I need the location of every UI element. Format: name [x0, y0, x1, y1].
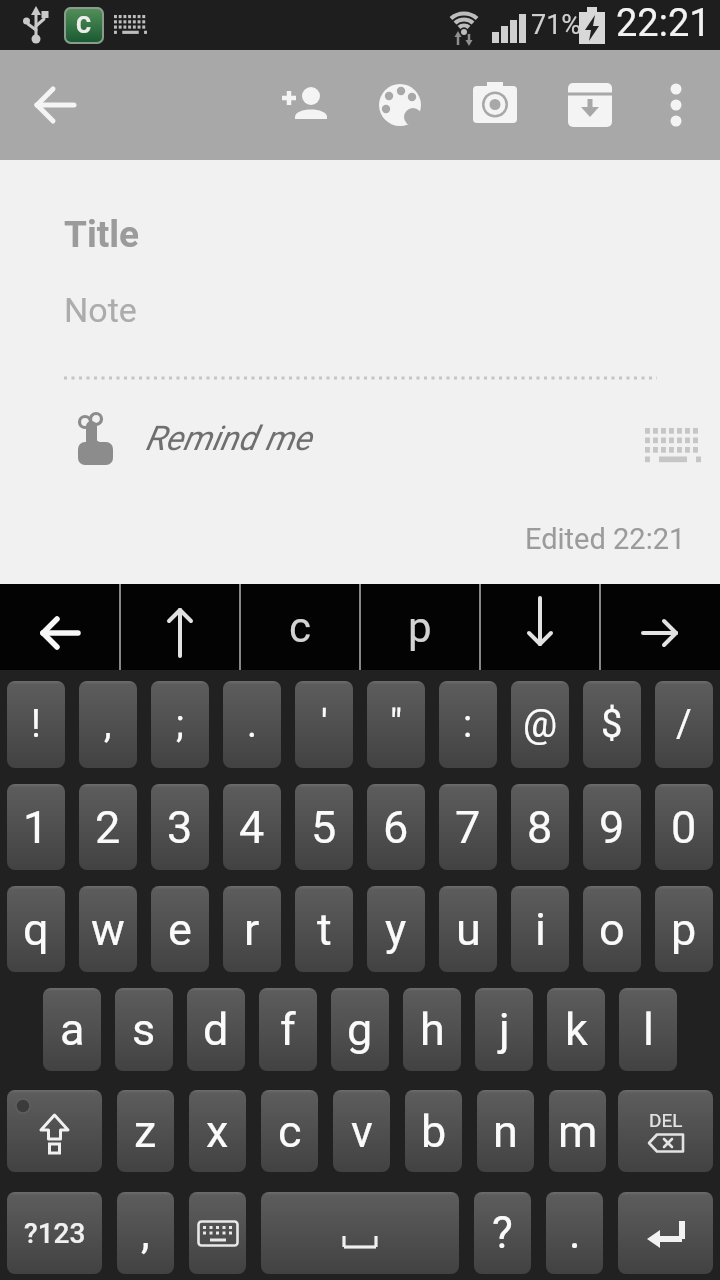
button[interactable]: ': [295, 681, 353, 768]
button[interactable]: /: [655, 681, 713, 768]
button[interactable]: [480, 584, 600, 670]
button[interactable]: .: [223, 681, 281, 768]
staticText: b: [421, 1105, 447, 1158]
button[interactable]: ?: [474, 1192, 531, 1274]
staticText: u: [456, 903, 481, 956]
staticText: i: [535, 903, 546, 956]
button[interactable]: ?123: [7, 1192, 102, 1274]
button[interactable]: 7: [439, 784, 497, 870]
staticText: ,: [104, 702, 112, 747]
button[interactable]: h: [403, 988, 461, 1071]
button[interactable]: ": [367, 681, 425, 768]
button[interactable]: ,: [117, 1192, 174, 1274]
button[interactable]: p: [655, 886, 713, 972]
button[interactable]: 2: [79, 784, 137, 870]
staticText: p: [408, 603, 432, 652]
staticText: 6: [383, 801, 409, 854]
button[interactable]: 4: [223, 784, 281, 870]
staticText: p: [671, 903, 697, 956]
staticText: c: [278, 1105, 302, 1158]
button[interactable]: b: [405, 1090, 462, 1172]
button[interactable]: [120, 584, 240, 670]
button[interactable]: [554, 69, 626, 141]
button[interactable]: r: [223, 886, 281, 972]
staticText: 4: [239, 801, 265, 854]
button[interactable]: i: [511, 886, 569, 972]
button[interactable]: o: [583, 886, 641, 972]
staticText: 5: [311, 801, 337, 854]
button[interactable]: [7, 1090, 102, 1172]
button[interactable]: e: [151, 886, 209, 972]
staticText: Note: [64, 290, 137, 330]
button[interactable]: [618, 1192, 713, 1274]
button[interactable]: [189, 1192, 246, 1274]
button[interactable]: .: [546, 1192, 603, 1274]
button[interactable]: p: [360, 584, 480, 670]
button[interactable]: [364, 69, 436, 141]
button[interactable]: 8: [511, 784, 569, 870]
staticText: l: [643, 1003, 654, 1056]
button[interactable]: x: [189, 1090, 246, 1172]
button[interactable]: t: [295, 886, 353, 972]
staticText: 1: [23, 801, 49, 854]
button[interactable]: [0, 50, 110, 160]
staticText: d: [203, 1003, 229, 1056]
button[interactable]: 0: [655, 784, 713, 870]
button[interactable]: s: [115, 988, 173, 1071]
button[interactable]: c: [261, 1090, 318, 1172]
button[interactable]: w: [79, 886, 137, 972]
staticText: j: [499, 1003, 510, 1056]
staticText: r: [244, 903, 260, 956]
staticText: :: [463, 702, 473, 747]
staticText: C: [76, 12, 92, 39]
button[interactable]: DEL: [618, 1090, 713, 1172]
staticText: ": [390, 702, 403, 747]
staticText: o: [599, 903, 625, 956]
staticText: c: [289, 603, 311, 652]
button[interactable]: Note: [60, 280, 660, 335]
button[interactable]: [640, 69, 712, 141]
button[interactable]: [269, 69, 341, 141]
button[interactable]: 9: [583, 784, 641, 870]
button[interactable]: j: [475, 988, 533, 1071]
button[interactable]: l: [619, 988, 677, 1071]
button[interactable]: z: [117, 1090, 174, 1172]
button[interactable]: $: [583, 681, 641, 768]
button[interactable]: @: [511, 681, 569, 768]
button[interactable]: k: [547, 988, 605, 1071]
button[interactable]: [600, 584, 720, 670]
button[interactable]: a: [43, 988, 101, 1071]
button[interactable]: 3: [151, 784, 209, 870]
button[interactable]: u: [439, 886, 497, 972]
button[interactable]: 1: [7, 784, 65, 870]
staticText: Remind me: [145, 418, 312, 458]
staticText: s: [132, 1003, 156, 1056]
staticText: !: [31, 702, 41, 747]
staticText: 8: [527, 801, 553, 854]
button[interactable]: n: [477, 1090, 534, 1172]
button[interactable]: c: [240, 584, 360, 670]
staticText: 71%: [531, 9, 582, 41]
button[interactable]: !: [7, 681, 65, 768]
button[interactable]: Remind me: [60, 408, 700, 478]
button[interactable]: ;: [151, 681, 209, 768]
button[interactable]: v: [333, 1090, 390, 1172]
button[interactable]: d: [187, 988, 245, 1071]
button[interactable]: q: [7, 886, 65, 972]
button[interactable]: 6: [367, 784, 425, 870]
staticText: DEL: [649, 1109, 683, 1131]
button[interactable]: ,: [79, 681, 137, 768]
button[interactable]: :: [439, 681, 497, 768]
button[interactable]: f: [259, 988, 317, 1071]
button[interactable]: g: [331, 988, 389, 1071]
staticText: .: [247, 702, 258, 747]
staticText: a: [60, 1003, 85, 1056]
button[interactable]: 5: [295, 784, 353, 870]
button[interactable]: [0, 584, 120, 670]
button[interactable]: y: [367, 886, 425, 972]
button[interactable]: [459, 69, 531, 141]
button[interactable]: [261, 1192, 459, 1274]
button[interactable]: m: [549, 1090, 606, 1172]
staticText: y: [385, 903, 407, 956]
button[interactable]: Title: [60, 205, 660, 260]
